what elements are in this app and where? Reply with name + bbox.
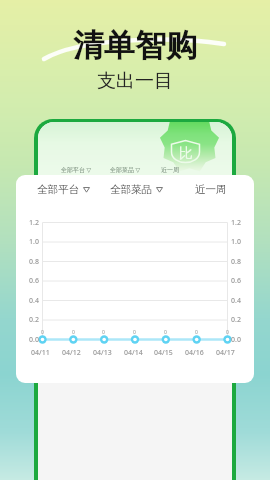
staticText: 1.2 [29,218,39,228]
staticText: 0 [72,329,75,336]
staticText: 04/15 [154,348,173,358]
staticText: 1.0 [231,237,241,247]
staticText: 0.0 [231,335,241,345]
staticText: 1.0 [29,237,39,247]
staticText: 0 [226,329,229,336]
button[interactable]: 近一周 [195,183,227,196]
staticText: 0.4 [231,296,241,306]
staticText: 0 [41,329,44,336]
staticText: 全部菜品 ▽ [110,166,141,174]
staticText: 04/13 [93,348,112,358]
staticText: 近一周 [161,166,179,174]
staticText: 04/14 [124,348,143,358]
staticText: 0 [164,329,167,336]
staticText: 全部平台 ▽ [61,166,92,174]
staticText: 清单智购 [73,26,197,65]
button[interactable]: 全部平台 [37,183,90,196]
staticText: 0.2 [231,315,241,325]
staticText: 0.8 [29,257,39,267]
staticText: 0.6 [231,276,241,286]
staticText: 全部菜品 [110,183,152,196]
staticText: 0.8 [231,257,241,267]
staticText: 0 [195,329,198,336]
staticText: 04/12 [62,348,81,358]
staticText: 04/11 [31,348,50,358]
staticText: 比 [179,145,193,163]
staticText: 0 [133,329,136,336]
staticText: 0.4 [29,296,39,306]
staticText: 0.2 [29,315,39,325]
staticText: 0 [102,329,105,336]
staticText: 全部平台 [37,183,79,196]
staticText: 近一周 [195,183,227,196]
staticText: 04/16 [185,348,204,358]
staticText: 04/17 [216,348,235,358]
button[interactable]: 全部菜品 [110,183,163,196]
staticText: 0.6 [29,276,39,286]
staticText: 1.2 [231,218,241,228]
staticText: 0.0 [29,335,39,345]
staticText: 支出一目 [97,69,173,93]
